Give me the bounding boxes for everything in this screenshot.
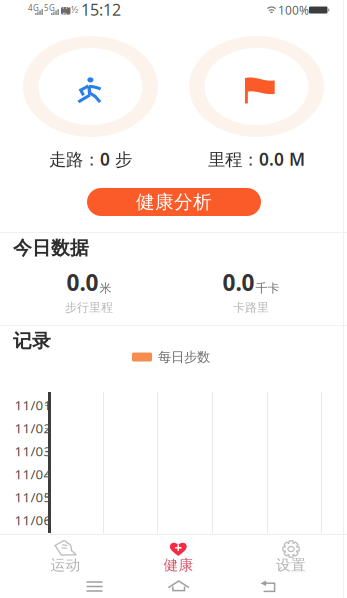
staticText: 11/01 (14, 396, 51, 414)
staticText: 11/05 (14, 488, 51, 506)
staticText: 健康 (163, 556, 193, 574)
staticText: 卡路里 (233, 300, 269, 315)
staticText: 0.0 (222, 267, 254, 297)
staticText: 11/03 (14, 442, 51, 460)
staticText: 5G (44, 3, 55, 13)
button[interactable]: 健康 (116, 535, 231, 575)
button[interactable] (140, 576, 218, 598)
staticText: 100% (278, 2, 309, 18)
button[interactable]: 运动 (0, 535, 116, 575)
button[interactable] (47, 575, 142, 598)
staticText: 11/04 (14, 465, 51, 483)
staticText: 记录 (13, 329, 51, 352)
staticText: 4G (28, 3, 39, 13)
staticText: 千卡 (255, 281, 279, 296)
staticText: 11/06 (14, 511, 51, 529)
staticText: 每日步数 (158, 349, 210, 365)
staticText: 里程：0.0 M (208, 147, 305, 170)
staticText: 健康分析 (136, 190, 212, 213)
staticText: HD (62, 2, 69, 20)
button[interactable]: 健康分析 (87, 188, 261, 216)
staticText: 15:12 (81, 0, 121, 20)
staticText: 米 (99, 281, 111, 296)
button[interactable] (216, 576, 316, 598)
staticText: 11/02 (14, 419, 51, 437)
staticText: ½ (71, 3, 78, 16)
staticText: 0.0 (66, 267, 98, 297)
staticText: 今日数据 (13, 236, 89, 259)
staticText: 走路：0 步 (49, 147, 132, 170)
staticText: 设置 (276, 556, 306, 574)
button[interactable]: 设置 (231, 535, 347, 575)
staticText: 步行里程 (65, 300, 113, 315)
staticText: 运动 (50, 556, 80, 574)
